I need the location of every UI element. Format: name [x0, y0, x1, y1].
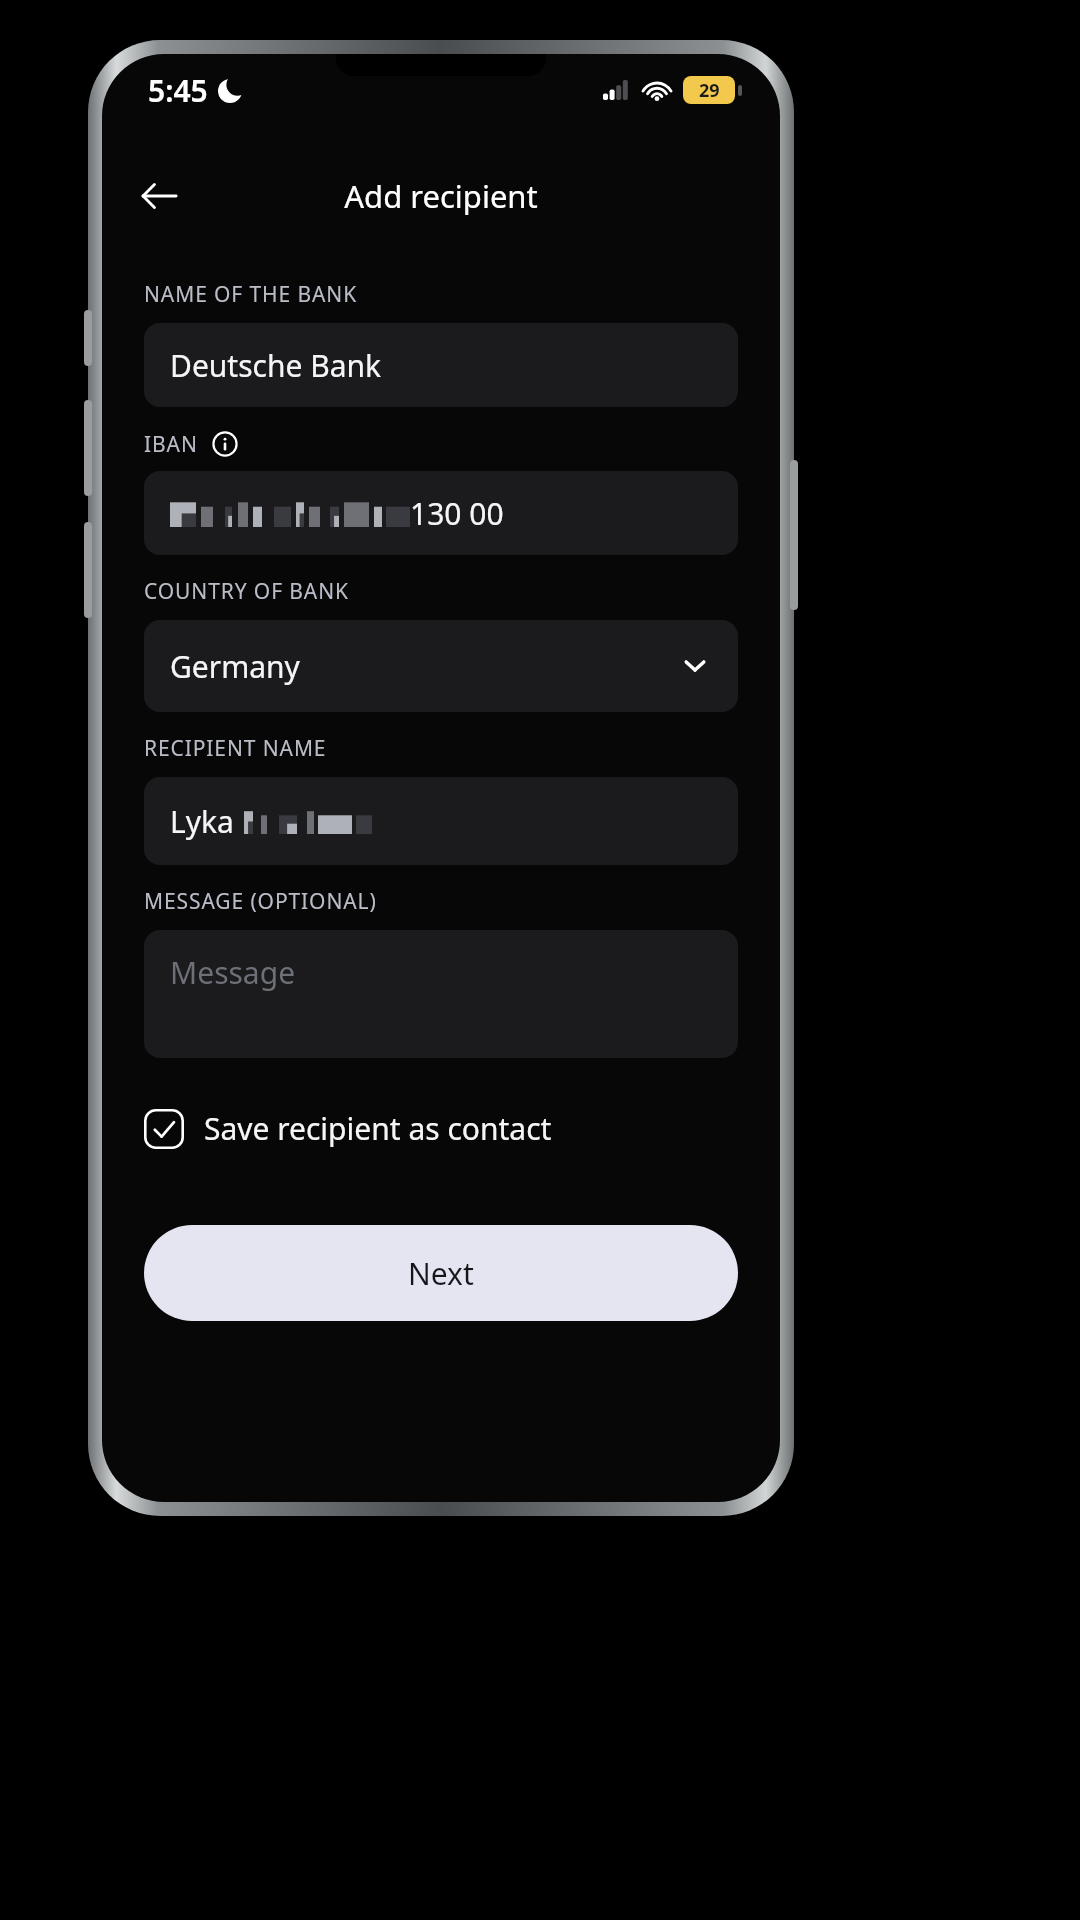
button[interactable]: Back	[128, 165, 190, 227]
staticText: 5:45	[148, 70, 208, 111]
button[interactable]: Next	[144, 1225, 738, 1321]
staticText: COUNTRY OF BANK	[144, 577, 349, 606]
staticText: 130 00	[410, 493, 504, 534]
staticText: Add recipient	[344, 175, 538, 217]
button[interactable]: Message	[144, 930, 738, 1058]
staticText: Next	[408, 1253, 474, 1294]
button[interactable]: IBAN info	[210, 429, 240, 459]
staticText: Lyka	[170, 801, 234, 842]
button[interactable]: Lyka	[144, 777, 738, 865]
staticText: Save recipient as contact	[204, 1108, 552, 1149]
button[interactable]: 130 00	[144, 471, 738, 555]
staticText: Deutsche Bank	[170, 345, 382, 386]
button[interactable]: Germany	[144, 620, 738, 712]
staticText: IBAN	[144, 430, 198, 459]
staticText: NAME OF THE BANK	[144, 280, 358, 309]
button[interactable]: Deutsche Bank	[144, 323, 738, 407]
staticText: Germany	[170, 646, 300, 687]
button[interactable]: Save recipient as contact	[144, 1102, 552, 1155]
staticText: MESSAGE (OPTIONAL)	[144, 887, 377, 916]
staticText: RECIPIENT NAME	[144, 734, 327, 763]
staticText: Message	[170, 952, 296, 993]
staticText: 29	[699, 78, 720, 103]
